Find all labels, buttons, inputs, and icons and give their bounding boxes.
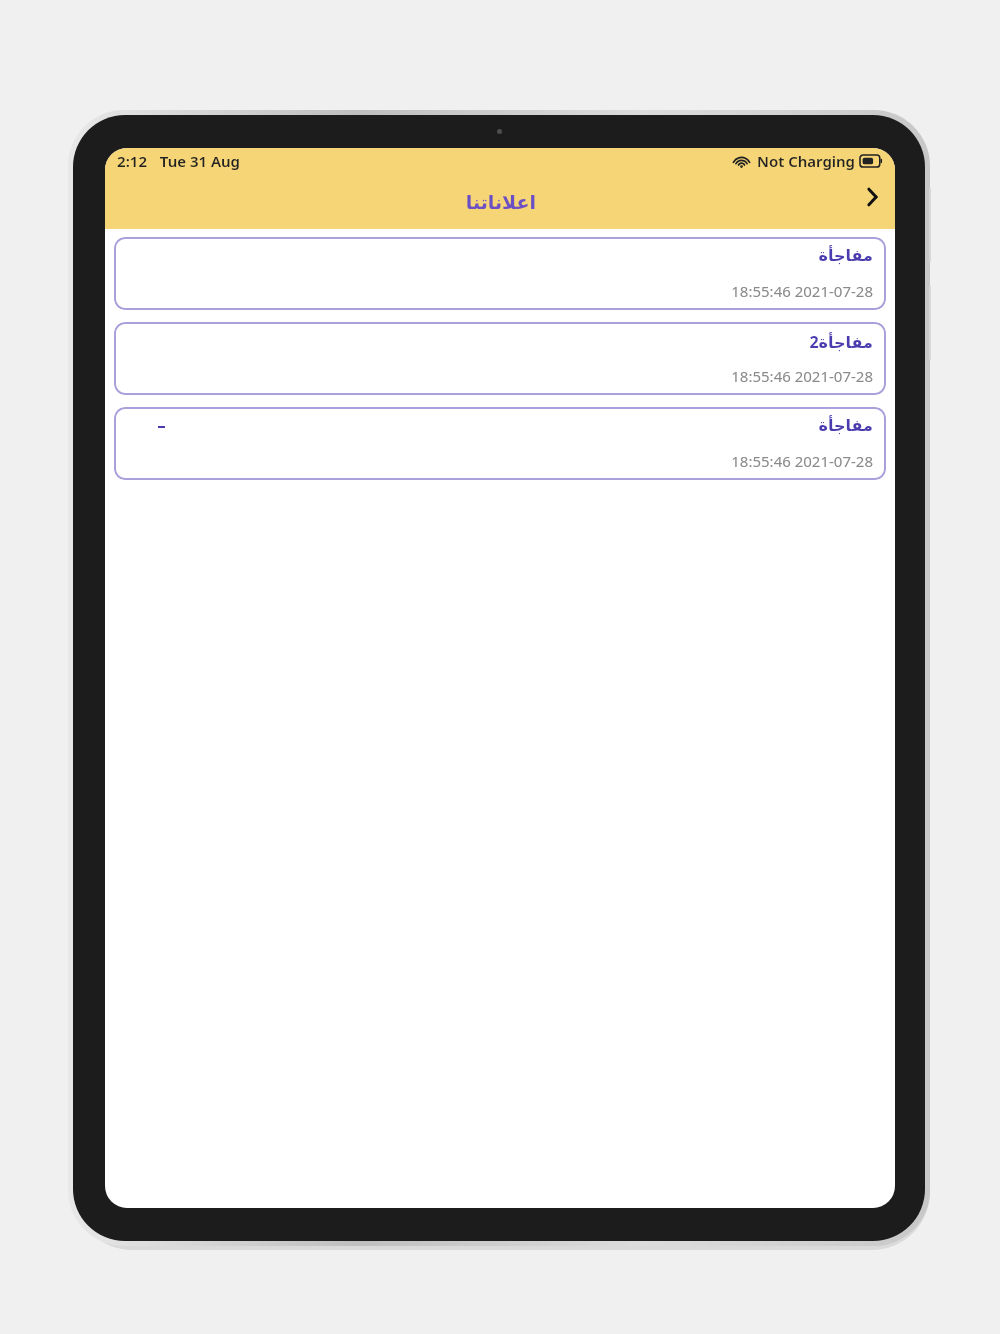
button[interactable]: مفاجأة (114, 237, 886, 310)
staticText: Tue 31 Aug (159, 151, 240, 171)
button[interactable]: مفاجأة2 (114, 322, 886, 395)
staticText: Not Charging (756, 151, 855, 171)
staticText: مفاجأة (818, 416, 873, 435)
button[interactable]: Forward (849, 174, 895, 220)
staticText: 2:12 (117, 151, 147, 171)
button[interactable]: مفاجأة (114, 407, 886, 480)
staticText: 18:55:46 2021-07-28 (731, 281, 873, 301)
staticText: اعلاناتنا (465, 191, 536, 213)
staticText: 18:55:46 2021-07-28 (731, 451, 873, 471)
staticText: مفاجأة2 (809, 331, 873, 353)
staticText: 18:55:46 2021-07-28 (731, 366, 873, 386)
staticText: مفاجأة (818, 246, 873, 265)
